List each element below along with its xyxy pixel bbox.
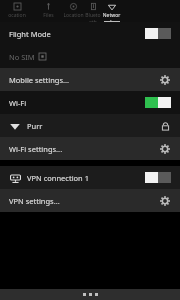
- button[interactable]: Purr: [0, 114, 180, 137]
- button[interactable]: Bluetooth: [84, 0, 102, 22]
- button[interactable]: Toggle off: [145, 28, 171, 39]
- staticText: Location: [63, 12, 84, 19]
- button[interactable]: Flight Mode: [0, 22, 180, 45]
- staticText: Network: [102, 12, 121, 22]
- button[interactable]: Mobile settings: [158, 73, 171, 86]
- button[interactable]: VPN settings: [158, 194, 171, 207]
- button[interactable]: VPN settings...: [0, 189, 180, 212]
- button[interactable]: No SIM: [0, 45, 180, 68]
- staticText: ocation: [8, 12, 26, 19]
- button[interactable]: Wi-Fi settings...: [0, 137, 180, 160]
- staticText: Mobile settings...: [9, 75, 70, 85]
- staticText: Flight Mode: [9, 29, 51, 39]
- staticText: Purr: [27, 121, 43, 131]
- button[interactable]: Toggle off: [145, 172, 171, 183]
- button[interactable]: Wi-Fi: [0, 91, 180, 114]
- button[interactable]: Files: [34, 0, 62, 22]
- staticText: VPN connection 1: [27, 173, 89, 183]
- staticText: Wi-Fi: [9, 98, 27, 108]
- button[interactable]: ocation: [0, 0, 34, 22]
- button[interactable]: Wi-Fi settings: [158, 142, 171, 155]
- button[interactable]: Network: [102, 0, 121, 22]
- staticText: Files: [43, 12, 54, 19]
- staticText: VPN settings...: [9, 196, 60, 206]
- other: Secured: [159, 120, 171, 132]
- button[interactable]: Toggle on: [145, 97, 171, 108]
- staticText: Wi-Fi settings...: [9, 144, 63, 154]
- button[interactable]: Location: [62, 0, 84, 22]
- staticText: No SIM: [9, 52, 35, 62]
- button[interactable]: VPN connection 1: [0, 166, 180, 189]
- staticText: Bluetooth: [84, 12, 102, 22]
- button[interactable]: Mobile settings...: [0, 68, 180, 91]
